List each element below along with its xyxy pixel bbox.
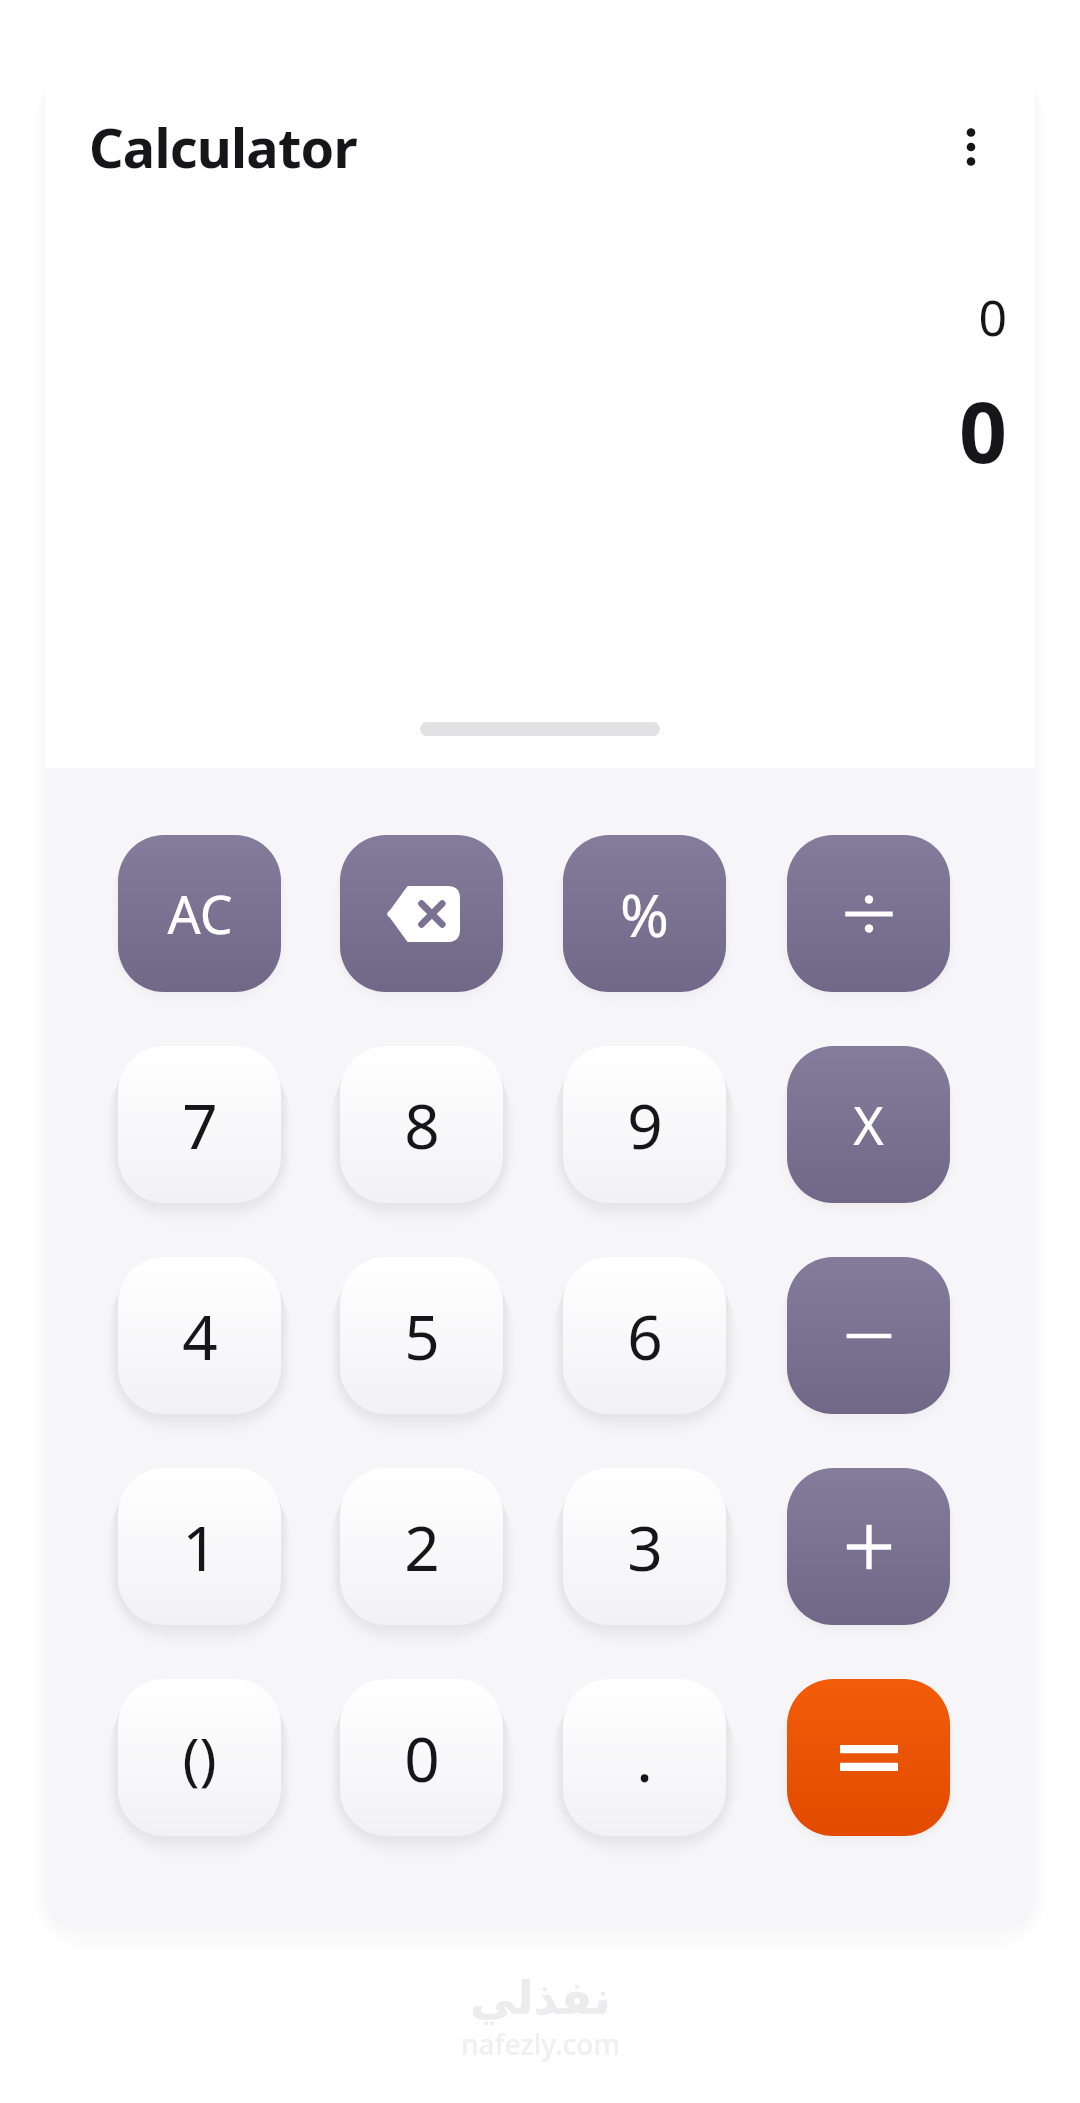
button[interactable]: 7 bbox=[118, 1046, 281, 1203]
staticText: X bbox=[853, 1089, 884, 1160]
staticText: 2 bbox=[404, 1505, 440, 1589]
button[interactable]: 2 bbox=[340, 1468, 503, 1625]
staticText: Calculator bbox=[89, 110, 357, 184]
staticText: 0 bbox=[958, 373, 1007, 487]
staticText: 7 bbox=[182, 1083, 218, 1167]
staticText: نفذلي bbox=[470, 1971, 611, 2025]
button[interactable]: 9 bbox=[563, 1046, 726, 1203]
staticText: () bbox=[182, 1719, 217, 1797]
staticText: 4 bbox=[182, 1294, 218, 1378]
staticText: . bbox=[636, 1716, 653, 1800]
button[interactable]: Backspace bbox=[340, 835, 503, 992]
staticText: nafezly.com bbox=[461, 2025, 620, 2063]
staticText: 6 bbox=[627, 1294, 663, 1378]
button[interactable]: Minus bbox=[787, 1257, 950, 1414]
button[interactable]: 3 bbox=[563, 1468, 726, 1625]
staticText: 8 bbox=[404, 1083, 440, 1167]
button[interactable]: Equals bbox=[787, 1679, 950, 1836]
staticText: 1 bbox=[182, 1505, 218, 1589]
button[interactable]: 0 bbox=[340, 1679, 503, 1836]
button[interactable]: X bbox=[787, 1046, 950, 1203]
button[interactable]: More options bbox=[927, 103, 1015, 191]
staticText: 5 bbox=[404, 1294, 440, 1378]
button[interactable]: . bbox=[563, 1679, 726, 1836]
button[interactable]: 6 bbox=[563, 1257, 726, 1414]
staticText: 3 bbox=[627, 1505, 663, 1589]
button[interactable]: 8 bbox=[340, 1046, 503, 1203]
staticText: AC bbox=[167, 878, 233, 949]
staticText: 9 bbox=[627, 1083, 663, 1167]
button[interactable]: () bbox=[118, 1679, 281, 1836]
button[interactable]: AC bbox=[118, 835, 281, 992]
staticText: % bbox=[620, 874, 669, 954]
staticText: 0 bbox=[404, 1716, 440, 1800]
button[interactable]: 4 bbox=[118, 1257, 281, 1414]
button[interactable]: Divide bbox=[787, 835, 950, 992]
staticText: 0 bbox=[978, 283, 1007, 351]
button[interactable]: 1 bbox=[118, 1468, 281, 1625]
button[interactable]: Plus bbox=[787, 1468, 950, 1625]
button[interactable]: % bbox=[563, 835, 726, 992]
button[interactable]: 5 bbox=[340, 1257, 503, 1414]
